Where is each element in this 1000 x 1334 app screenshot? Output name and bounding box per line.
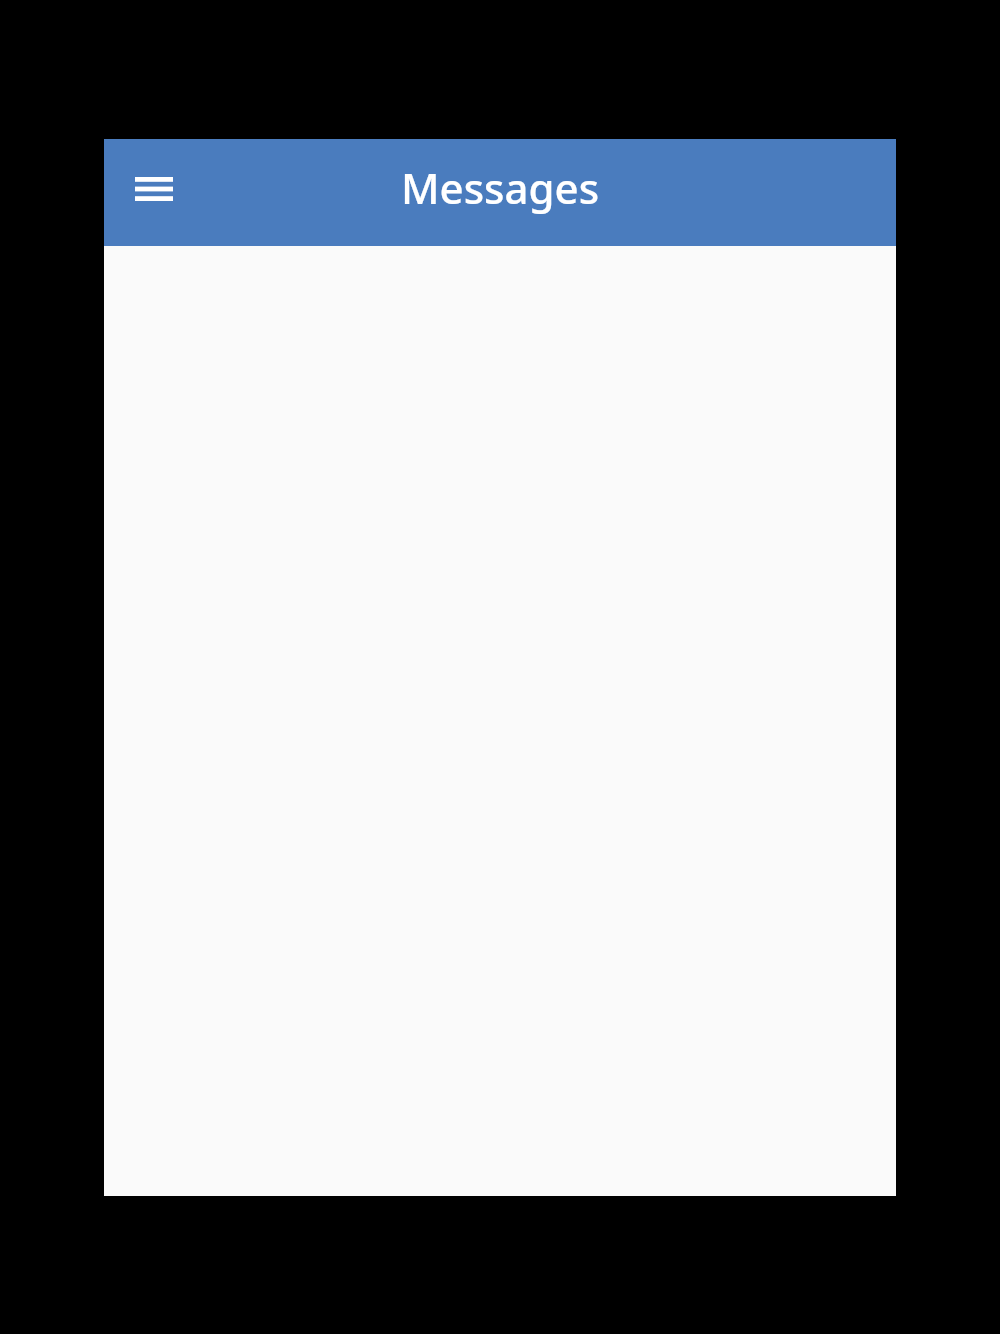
staticText: Messages: [401, 159, 600, 216]
button[interactable]: [104, 139, 204, 246]
